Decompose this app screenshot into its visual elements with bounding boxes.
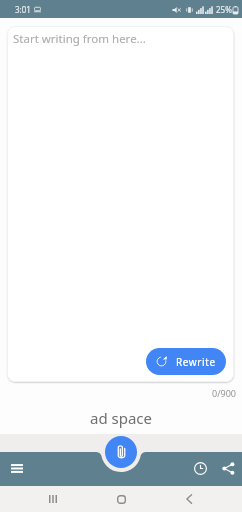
- button[interactable]: Menu: [5, 455, 29, 479]
- button[interactable]: Recent apps: [40, 486, 66, 512]
- staticText: ad space: [0, 408, 242, 428]
- button[interactable]: Home: [108, 486, 134, 512]
- staticText: 25%: [216, 4, 232, 15]
- button[interactable]: Attach file: [105, 436, 137, 468]
- staticText: 0/900: [0, 387, 236, 399]
- staticText: Rewrite: [176, 355, 216, 369]
- staticText: Start writing from here...: [13, 31, 146, 47]
- button[interactable]: Rewrite: [146, 348, 226, 375]
- staticText: 3:01: [15, 4, 31, 15]
- button[interactable]: Share: [216, 456, 240, 480]
- button[interactable]: History: [188, 456, 212, 480]
- button[interactable]: Back: [176, 486, 202, 512]
